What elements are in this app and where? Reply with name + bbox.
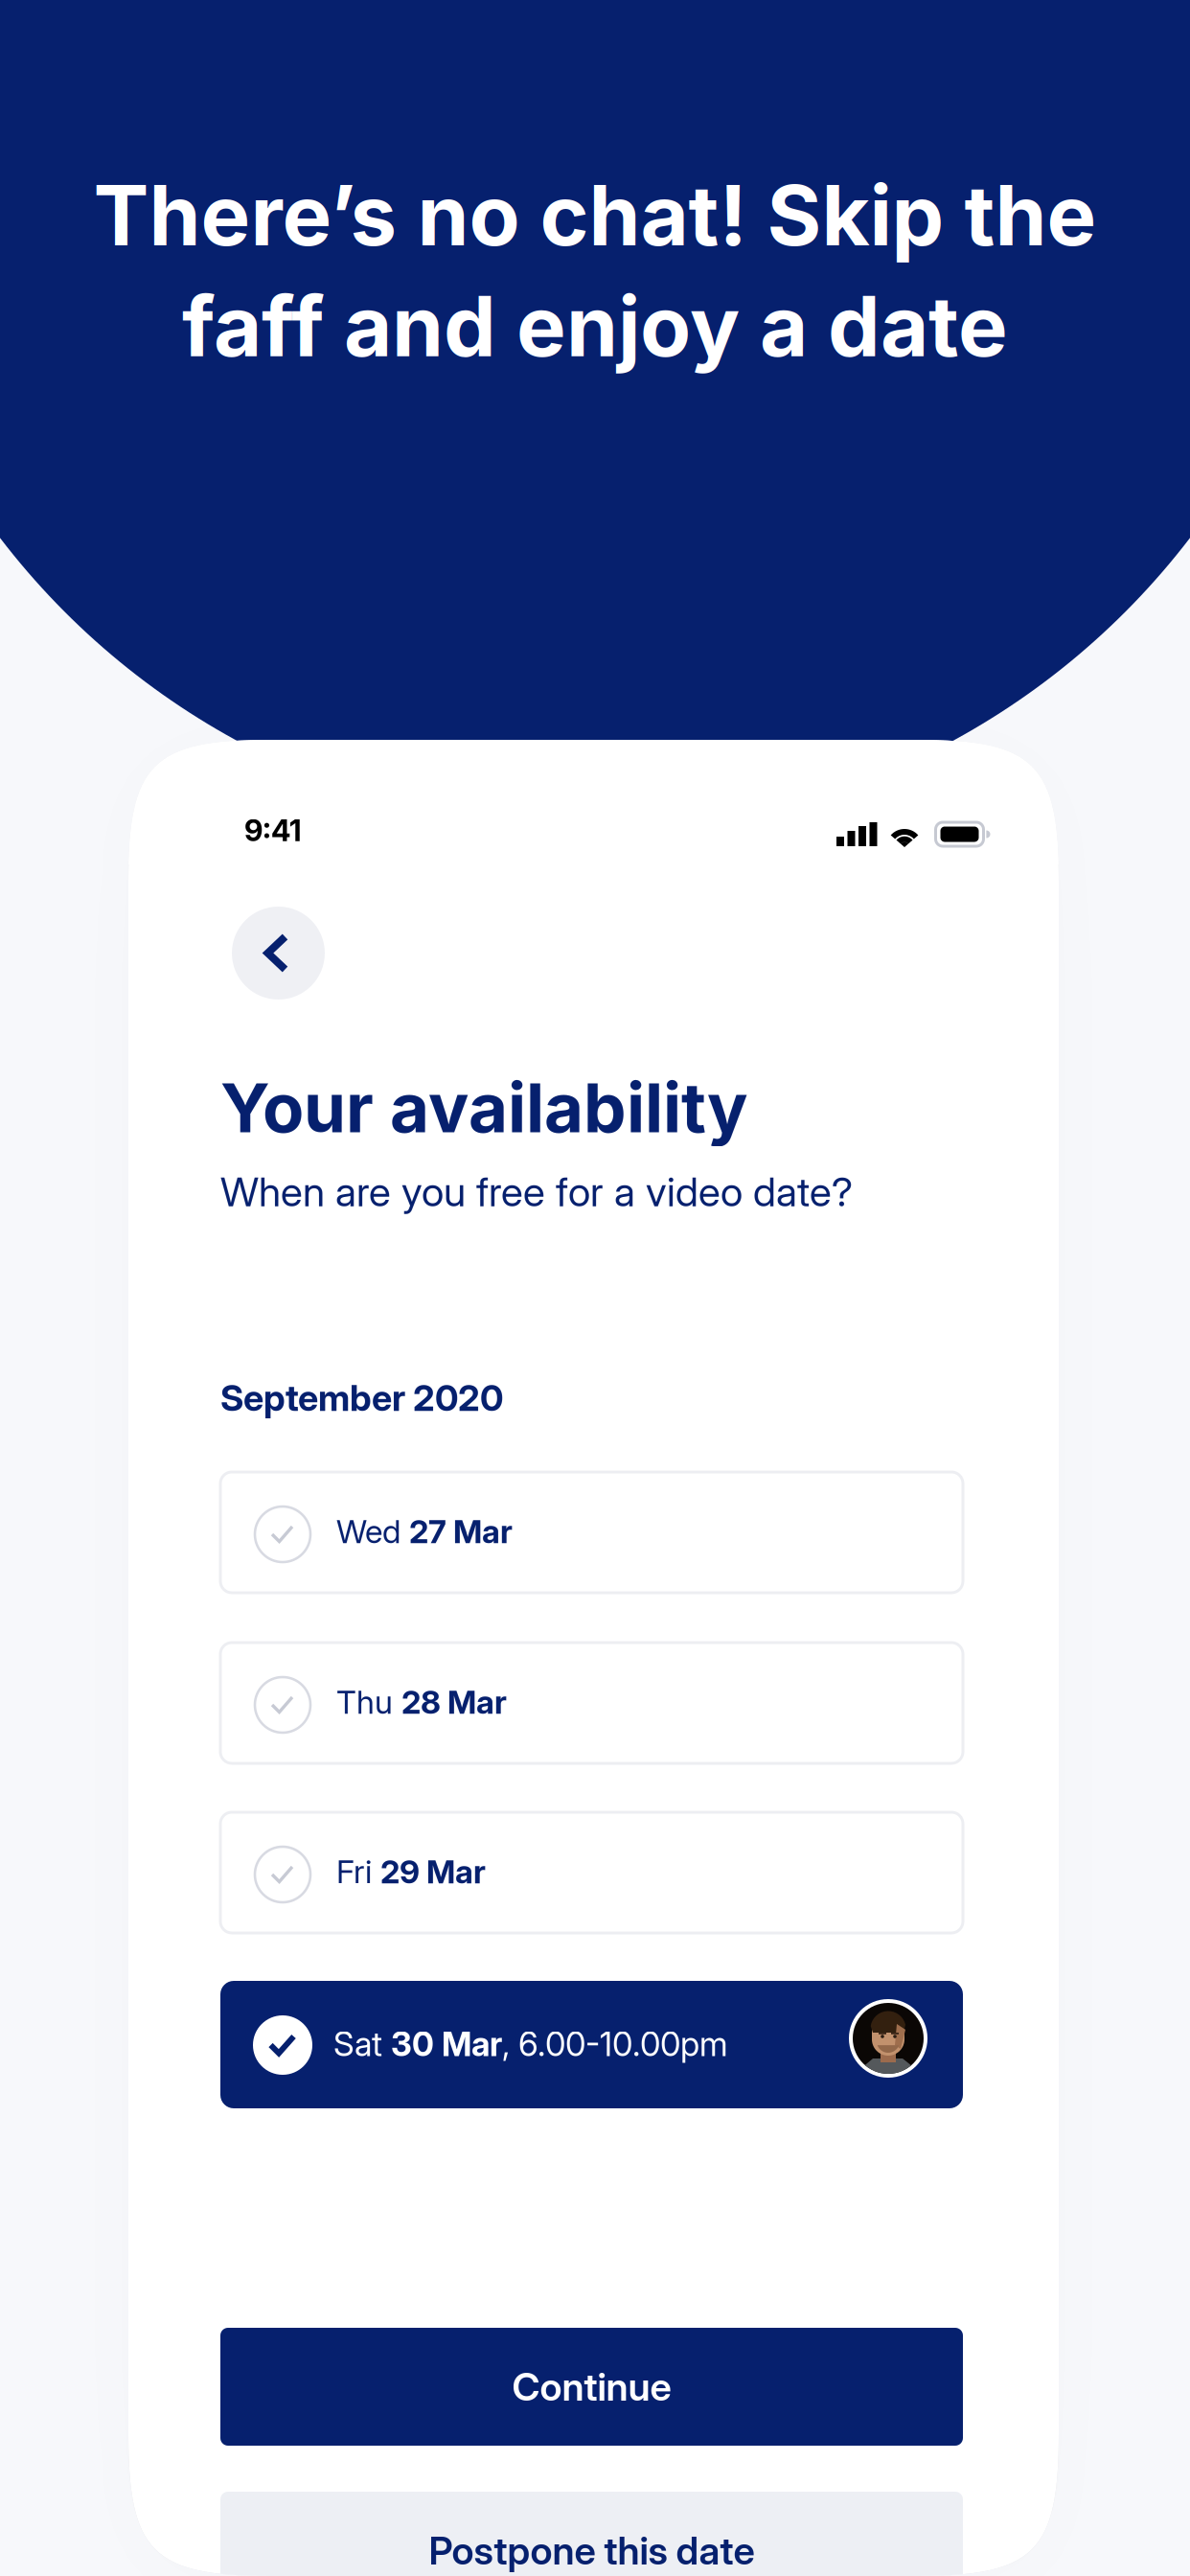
staticText: When are you free for a video date? xyxy=(220,1167,853,1216)
staticText: 30 Mar xyxy=(391,2024,502,2064)
staticText: 29 Mar xyxy=(380,1852,486,1891)
button[interactable]: Postpone this date xyxy=(220,2492,963,2576)
staticText: Sat xyxy=(333,2024,391,2064)
staticText: Continue xyxy=(512,2364,671,2410)
button[interactable]: Continue xyxy=(220,2328,963,2446)
staticText: There’s no chat! Skip the xyxy=(93,165,1097,265)
staticText: Fri xyxy=(336,1852,380,1891)
staticText: 28 Mar xyxy=(401,1683,507,1721)
button[interactable]: Wed xyxy=(220,1472,963,1593)
staticText: September 2020 xyxy=(220,1376,503,1419)
staticText: Thu xyxy=(336,1683,401,1721)
staticText: 27 Mar xyxy=(409,1512,513,1551)
staticText: , 6.00-10.00pm xyxy=(502,2024,728,2064)
button[interactable]: Thu xyxy=(220,1643,963,1763)
button[interactable]: Fri xyxy=(220,1812,963,1933)
button[interactable]: Back xyxy=(232,907,325,1000)
button[interactable]: Sat xyxy=(220,1981,963,2108)
staticText: Your availability xyxy=(220,1067,748,1149)
staticText: Wed xyxy=(336,1512,409,1551)
staticText: Postpone this date xyxy=(429,2527,755,2574)
staticText: faff and enjoy a date xyxy=(182,276,1008,376)
staticText: 9:41 xyxy=(244,813,302,848)
